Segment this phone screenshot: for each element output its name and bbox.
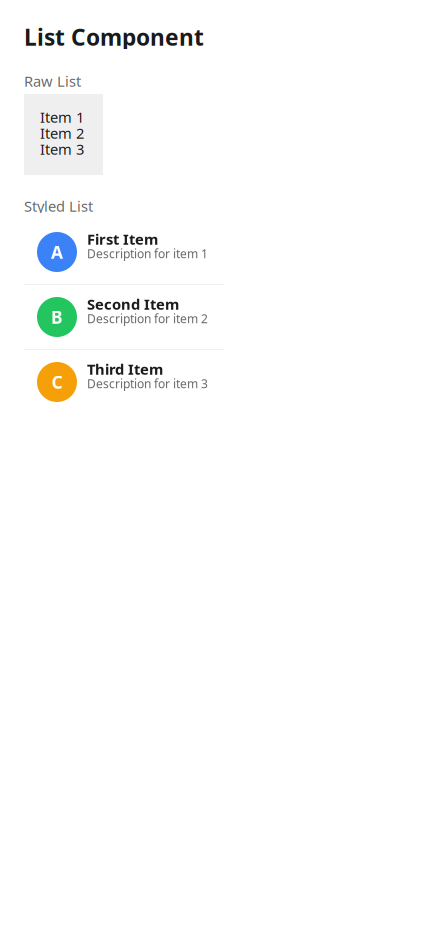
staticText: List Component	[24, 22, 204, 52]
staticText: Raw List	[24, 71, 81, 91]
staticText: Third Item	[87, 359, 163, 379]
staticText: First Item	[87, 229, 158, 249]
staticText: Description for item 3	[87, 375, 208, 391]
staticText: Description for item 2	[87, 310, 208, 326]
staticText: Item 3	[40, 139, 84, 159]
staticText: B	[51, 305, 63, 328]
button[interactable]: C	[24, 350, 224, 414]
staticText: Item 2	[40, 123, 84, 143]
staticText: Description for item 1	[87, 245, 208, 261]
button[interactable]: A	[24, 220, 224, 284]
staticText: Item 1	[40, 107, 84, 127]
staticText: Styled List	[24, 196, 93, 216]
button[interactable]: B	[24, 285, 224, 349]
staticText: Second Item	[87, 294, 179, 314]
staticText: A	[51, 240, 63, 263]
staticText: C	[51, 370, 62, 393]
